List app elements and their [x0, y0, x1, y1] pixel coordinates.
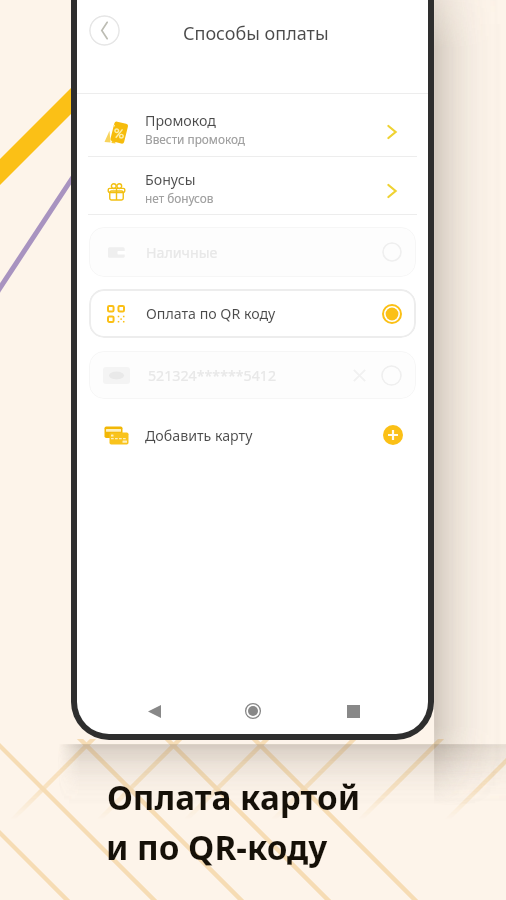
button[interactable]: Back [132, 689, 176, 733]
button[interactable]: Бонусы [77, 159, 428, 217]
button[interactable]: Оплата по QR коду [89, 289, 416, 338]
staticText: Способы оплаты [183, 21, 329, 46]
staticText: и по QR-коду [106, 824, 328, 869]
staticText: 521324******5412 [148, 366, 349, 385]
button[interactable]: Добавить карту [77, 415, 428, 455]
button[interactable]: Наличные [89, 227, 416, 277]
staticText: Оплата картой [107, 774, 361, 819]
button[interactable]: Recents [331, 689, 375, 733]
staticText: Оплата по QR коду [146, 304, 382, 323]
staticText: нет бонусов [145, 190, 214, 206]
button[interactable]: Назад [89, 15, 120, 46]
button[interactable]: 521324******5412 [89, 351, 416, 399]
button[interactable]: Добавить [383, 425, 403, 445]
button[interactable]: Промокод [77, 100, 428, 158]
staticText: Промокод [145, 111, 216, 130]
staticText: Ввести промокод [145, 131, 245, 147]
staticText: Наличные [146, 243, 382, 262]
button[interactable]: Home [231, 689, 275, 733]
button[interactable]: Удалить [349, 365, 369, 385]
staticText: Бонусы [145, 170, 196, 189]
staticText: Добавить карту [145, 426, 383, 445]
